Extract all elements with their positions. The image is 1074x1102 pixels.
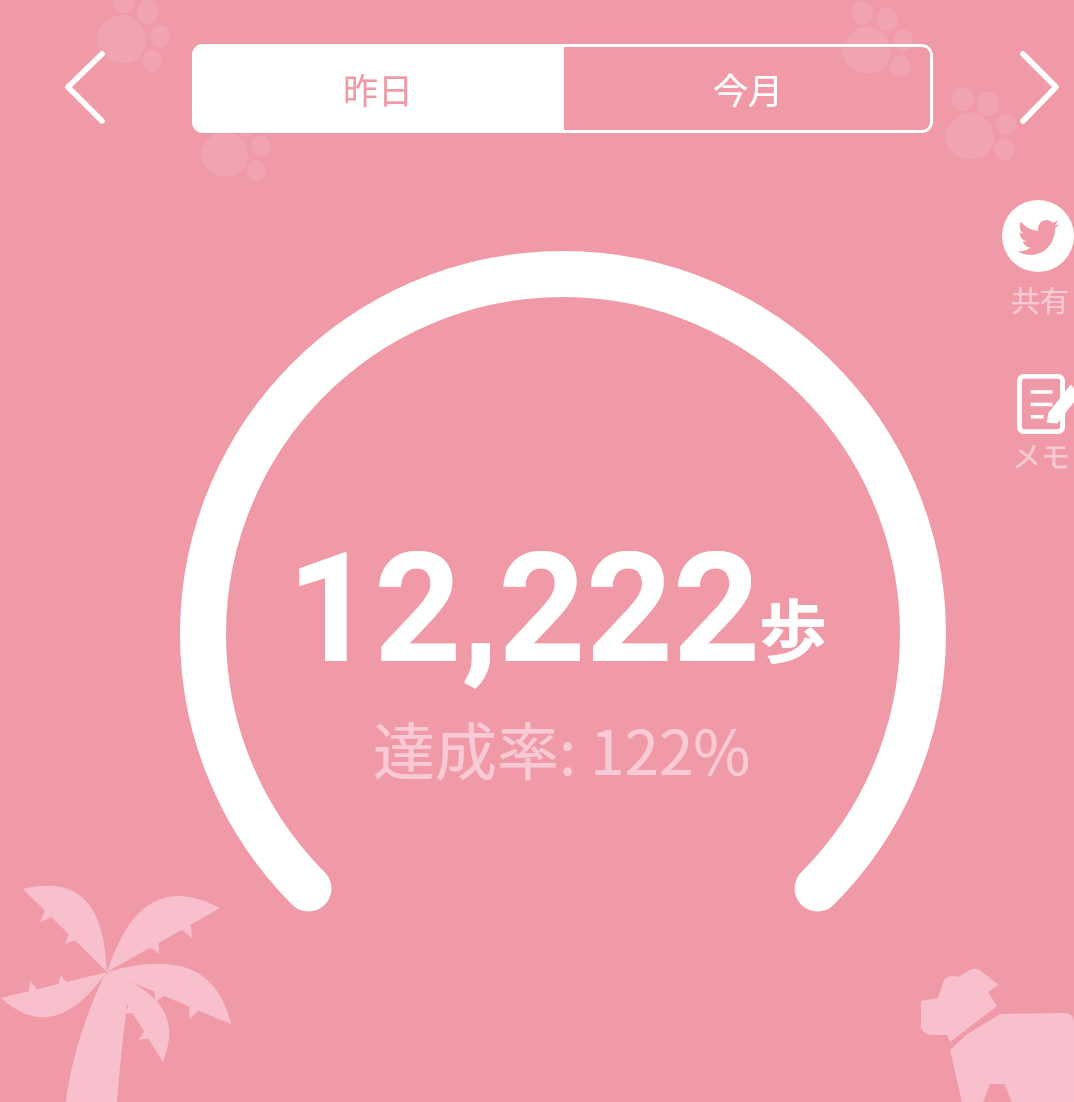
button[interactable]: 前の期間: [46, 34, 122, 142]
staticText: 達成率: 122%: [373, 703, 751, 793]
button[interactable]: 今月: [564, 44, 933, 133]
button[interactable]: 昨日: [192, 44, 564, 133]
staticText: 昨日: [343, 63, 414, 114]
button[interactable]: メモ: [1010, 370, 1074, 470]
staticText: 今月: [713, 63, 784, 114]
button[interactable]: 共有: [998, 196, 1074, 316]
button[interactable]: 次の期間: [998, 34, 1074, 142]
staticText: 歩: [759, 578, 828, 676]
staticText: 共有: [1011, 278, 1070, 320]
staticText: メモ: [1012, 434, 1071, 476]
staticText: 12,222: [287, 520, 761, 698]
